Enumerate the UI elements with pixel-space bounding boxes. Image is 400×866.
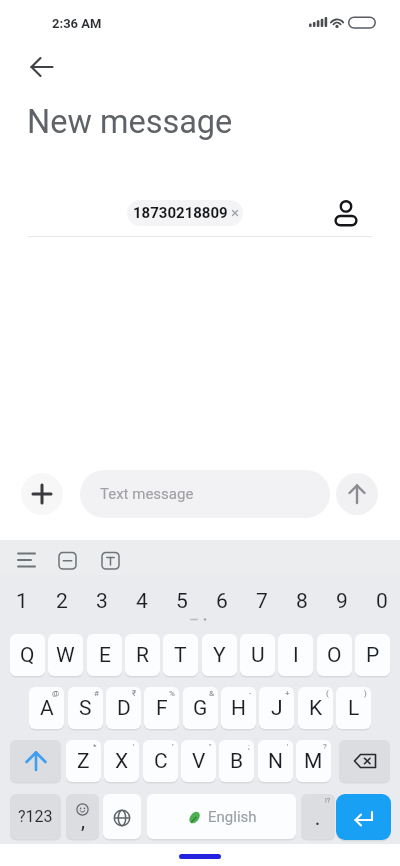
- staticText: 0: [376, 589, 388, 614]
- button[interactable]: I: [278, 634, 313, 676]
- staticText: E: [99, 643, 111, 668]
- button[interactable]: Text message: [80, 470, 330, 518]
- button[interactable]: [92, 542, 128, 578]
- staticText: 3: [96, 589, 108, 614]
- button[interactable]: K: [298, 687, 333, 729]
- button[interactable]: B: [219, 740, 254, 782]
- button[interactable]: [21, 473, 63, 515]
- button[interactable]: S: [68, 687, 103, 729]
- staticText: D: [117, 696, 131, 721]
- button[interactable]: [8, 542, 44, 578]
- staticText: T: [174, 643, 187, 668]
- staticText: R: [136, 643, 149, 668]
- staticText: ,: [81, 811, 85, 832]
- staticText: G: [193, 696, 208, 721]
- button[interactable]: M: [296, 740, 331, 782]
- button[interactable]: [179, 854, 221, 859]
- button[interactable]: Q: [10, 634, 45, 676]
- staticText: ;: [248, 742, 250, 751]
- button[interactable]: English: [147, 794, 296, 839]
- staticText: %: [169, 689, 175, 698]
- staticText: J: [271, 696, 283, 721]
- button[interactable]: F: [144, 687, 179, 729]
- staticText: 6: [216, 589, 228, 614]
- button[interactable]: 6: [202, 587, 242, 615]
- staticText: -: [249, 689, 252, 698]
- button[interactable]: Y: [202, 634, 237, 676]
- staticText: 1: [16, 589, 28, 614]
- button[interactable]: P: [355, 634, 390, 676]
- staticText: P: [366, 643, 380, 668]
- staticText: M: [304, 749, 323, 774]
- staticText: F: [156, 696, 168, 721]
- button[interactable]: L: [336, 687, 371, 729]
- button[interactable]: V: [181, 740, 216, 782]
- button[interactable]: ,: [66, 794, 99, 839]
- staticText: 2:36 AM: [52, 16, 102, 31]
- staticText: W: [56, 643, 75, 668]
- staticText: ’: [172, 742, 174, 751]
- staticText: Q: [20, 643, 35, 668]
- button[interactable]: T: [163, 634, 198, 676]
- staticText: !?: [325, 797, 331, 805]
- button[interactable]: O: [317, 634, 352, 676]
- staticText: V: [192, 749, 206, 774]
- button[interactable]: 5: [162, 587, 202, 615]
- staticText: X: [115, 749, 129, 774]
- staticText: ?123: [18, 807, 53, 826]
- button[interactable]: E: [87, 634, 122, 676]
- staticText: Y: [213, 643, 226, 668]
- staticText: H: [231, 696, 246, 721]
- staticText: (: [326, 689, 329, 698]
- button[interactable]: W: [48, 634, 83, 676]
- button[interactable]: .: [301, 794, 335, 839]
- button[interactable]: [103, 794, 141, 839]
- button[interactable]: D: [106, 687, 141, 729]
- staticText: ?: [323, 742, 327, 751]
- button[interactable]: 1: [2, 587, 42, 615]
- button[interactable]: 2: [42, 587, 82, 615]
- staticText: 2: [56, 589, 68, 614]
- staticText: 8: [296, 589, 308, 614]
- button[interactable]: 4: [122, 587, 162, 615]
- staticText: English: [208, 808, 257, 826]
- staticText: 18730218809: [133, 204, 228, 222]
- button[interactable]: X: [104, 740, 139, 782]
- button[interactable]: A: [29, 687, 64, 729]
- staticText: O: [327, 643, 342, 668]
- button[interactable]: U: [240, 634, 275, 676]
- button[interactable]: [328, 194, 362, 228]
- button[interactable]: ?123: [10, 794, 61, 839]
- button[interactable]: 8: [282, 587, 322, 615]
- button[interactable]: H: [221, 687, 256, 729]
- button[interactable]: 0: [362, 587, 400, 615]
- button[interactable]: [339, 740, 390, 782]
- staticText: +: [285, 689, 290, 698]
- staticText: C: [154, 749, 168, 774]
- button[interactable]: [10, 740, 61, 782]
- button[interactable]: 3: [82, 587, 122, 615]
- staticText: Text message: [100, 485, 194, 503]
- button[interactable]: [49, 542, 85, 578]
- button[interactable]: 9: [322, 587, 362, 615]
- button[interactable]: Z: [66, 740, 101, 782]
- button[interactable]: R: [125, 634, 160, 676]
- staticText: S: [79, 696, 92, 721]
- button[interactable]: 18730218809: [127, 200, 243, 226]
- button[interactable]: J: [259, 687, 294, 729]
- button[interactable]: [22, 47, 62, 87]
- button[interactable]: C: [143, 740, 178, 782]
- button[interactable]: N: [258, 740, 293, 782]
- staticText: &: [209, 689, 214, 698]
- staticText: *: [93, 742, 97, 751]
- staticText: 7: [256, 589, 268, 614]
- button[interactable]: 7: [242, 587, 282, 615]
- button[interactable]: [336, 473, 378, 515]
- staticText: I: [293, 643, 299, 668]
- staticText: ": [209, 742, 212, 751]
- button[interactable]: [336, 794, 391, 840]
- staticText: 4: [136, 589, 148, 614]
- button[interactable]: G: [183, 687, 218, 729]
- staticText: B: [230, 749, 244, 774]
- staticText: Z: [77, 749, 90, 774]
